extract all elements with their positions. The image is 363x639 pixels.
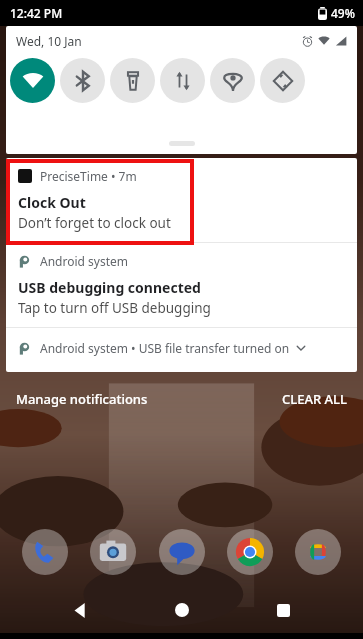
staticText: Manage notifications: [16, 390, 148, 408]
button[interactable]: Manage notifications: [16, 384, 148, 414]
button[interactable]: Phone: [22, 529, 68, 575]
staticText: Android system: [40, 253, 128, 269]
button[interactable]: CLEAR ALL: [282, 384, 347, 414]
button[interactable]: Quick setting: [110, 58, 155, 103]
button[interactable]: Quick setting: [160, 58, 205, 103]
button[interactable]: Android system: [6, 243, 357, 327]
staticText: Wed, 10 Jan: [16, 33, 82, 49]
staticText: Clock Out: [18, 193, 86, 212]
button[interactable]: Camera: [90, 529, 136, 575]
button[interactable]: Android system • USB file transfer turne…: [6, 328, 357, 372]
staticText: 12:42 PM: [10, 5, 63, 21]
staticText: USB debugging connected: [18, 278, 201, 297]
staticText: Android system • USB file transfer turne…: [40, 340, 290, 356]
staticText: Tap to turn off USB debugging: [18, 299, 211, 317]
button[interactable]: Quick setting: [60, 58, 105, 103]
button[interactable]: Quick setting: [210, 58, 255, 103]
button[interactable]: Quick setting: [260, 58, 305, 103]
button[interactable]: Recents: [261, 588, 305, 632]
button[interactable]: Quick setting on: [10, 58, 55, 103]
button[interactable]: Messages: [159, 529, 205, 575]
button[interactable]: Chrome: [227, 529, 273, 575]
staticText: CLEAR ALL: [282, 390, 347, 408]
staticText: 49%: [331, 5, 355, 21]
button[interactable]: Home: [160, 588, 204, 632]
button[interactable]: Back: [58, 588, 102, 632]
staticText: Don’t forget to clock out: [18, 214, 171, 232]
button[interactable]: PreciseTime • 7m: [6, 158, 357, 242]
staticText: PreciseTime • 7m: [40, 168, 137, 184]
button[interactable]: Photos: [295, 529, 341, 575]
